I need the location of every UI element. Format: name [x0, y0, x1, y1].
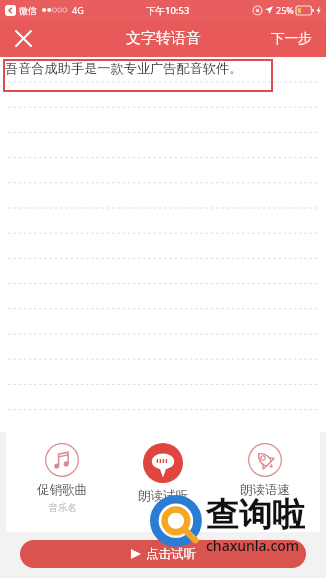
other: 朗读试听 — [143, 443, 183, 483]
button[interactable]: 吾音合成助手是一款专业广告配音软件。 — [3, 59, 273, 92]
button[interactable]: 促销歌曲 — [16, 441, 108, 516]
button[interactable]: 朗读语速 — [219, 441, 311, 517]
staticText — [162, 508, 165, 521]
staticText: 微信 — [19, 5, 37, 16]
staticText: 朗读语速 — [240, 482, 290, 498]
staticText: 音乐名 — [48, 502, 77, 514]
staticText: 点击试听 — [146, 546, 196, 562]
other: 朗读语速 — [248, 443, 282, 477]
staticText: chaxunla.com — [206, 536, 300, 555]
button[interactable]: 下一步 — [257, 20, 326, 57]
staticText: 25% — [276, 4, 294, 16]
staticText: 下一步 — [271, 30, 312, 47]
staticText: 朗读试听 — [138, 488, 188, 504]
button[interactable]: 点击试听 — [20, 540, 306, 568]
staticText: 文字转语音 — [126, 29, 201, 48]
staticText: 查询啦 — [206, 494, 305, 536]
staticText — [264, 502, 267, 515]
other: 促销歌曲 — [45, 443, 79, 477]
staticText: 4G — [72, 4, 84, 16]
button[interactable]: Close — [4, 20, 42, 57]
staticText: 吾音合成助手是一款专业广告配音软件。 — [5, 60, 243, 77]
button[interactable]: 朗读试听 — [117, 441, 209, 523]
staticText: 促销歌曲 — [37, 482, 87, 498]
staticText: 下午10:53 — [146, 4, 190, 17]
